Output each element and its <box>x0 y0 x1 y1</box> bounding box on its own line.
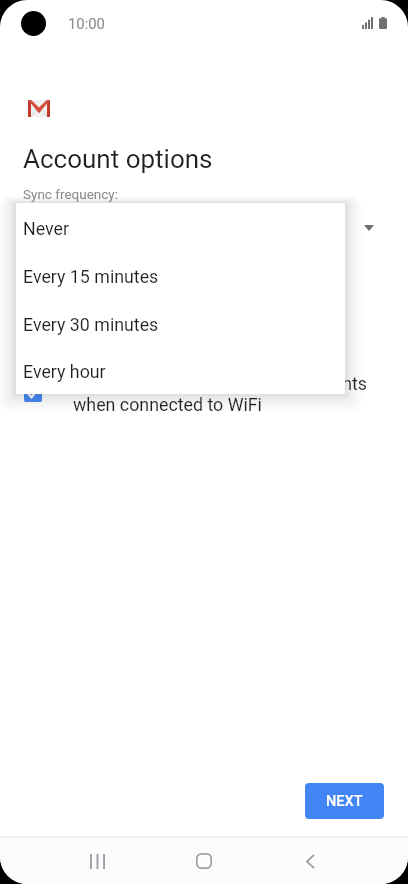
staticText: Every hour <box>23 361 106 382</box>
staticText: Automatically download attachments <box>72 373 368 394</box>
staticText: Every 30 minutes <box>23 314 159 335</box>
button[interactable]: Back <box>257 838 364 884</box>
staticText: Every 15 minutes <box>23 266 159 287</box>
button[interactable]: Every hour <box>16 347 345 394</box>
staticText: NEXT <box>326 793 363 810</box>
button[interactable]: Every 30 minutes <box>16 299 345 347</box>
staticText: when connected to WiFi <box>73 394 262 415</box>
button[interactable]: Never <box>16 203 345 251</box>
button[interactable]: NEXT <box>305 783 384 819</box>
button[interactable]: Recent apps <box>44 838 150 884</box>
button[interactable]: Every 15 minutes <box>16 251 345 299</box>
staticText: Never <box>23 218 69 239</box>
staticText: Sync frequency: <box>23 186 119 202</box>
staticText: 10:00 <box>68 15 105 32</box>
button[interactable]: Home <box>150 838 257 884</box>
staticText: Account options <box>23 144 213 174</box>
